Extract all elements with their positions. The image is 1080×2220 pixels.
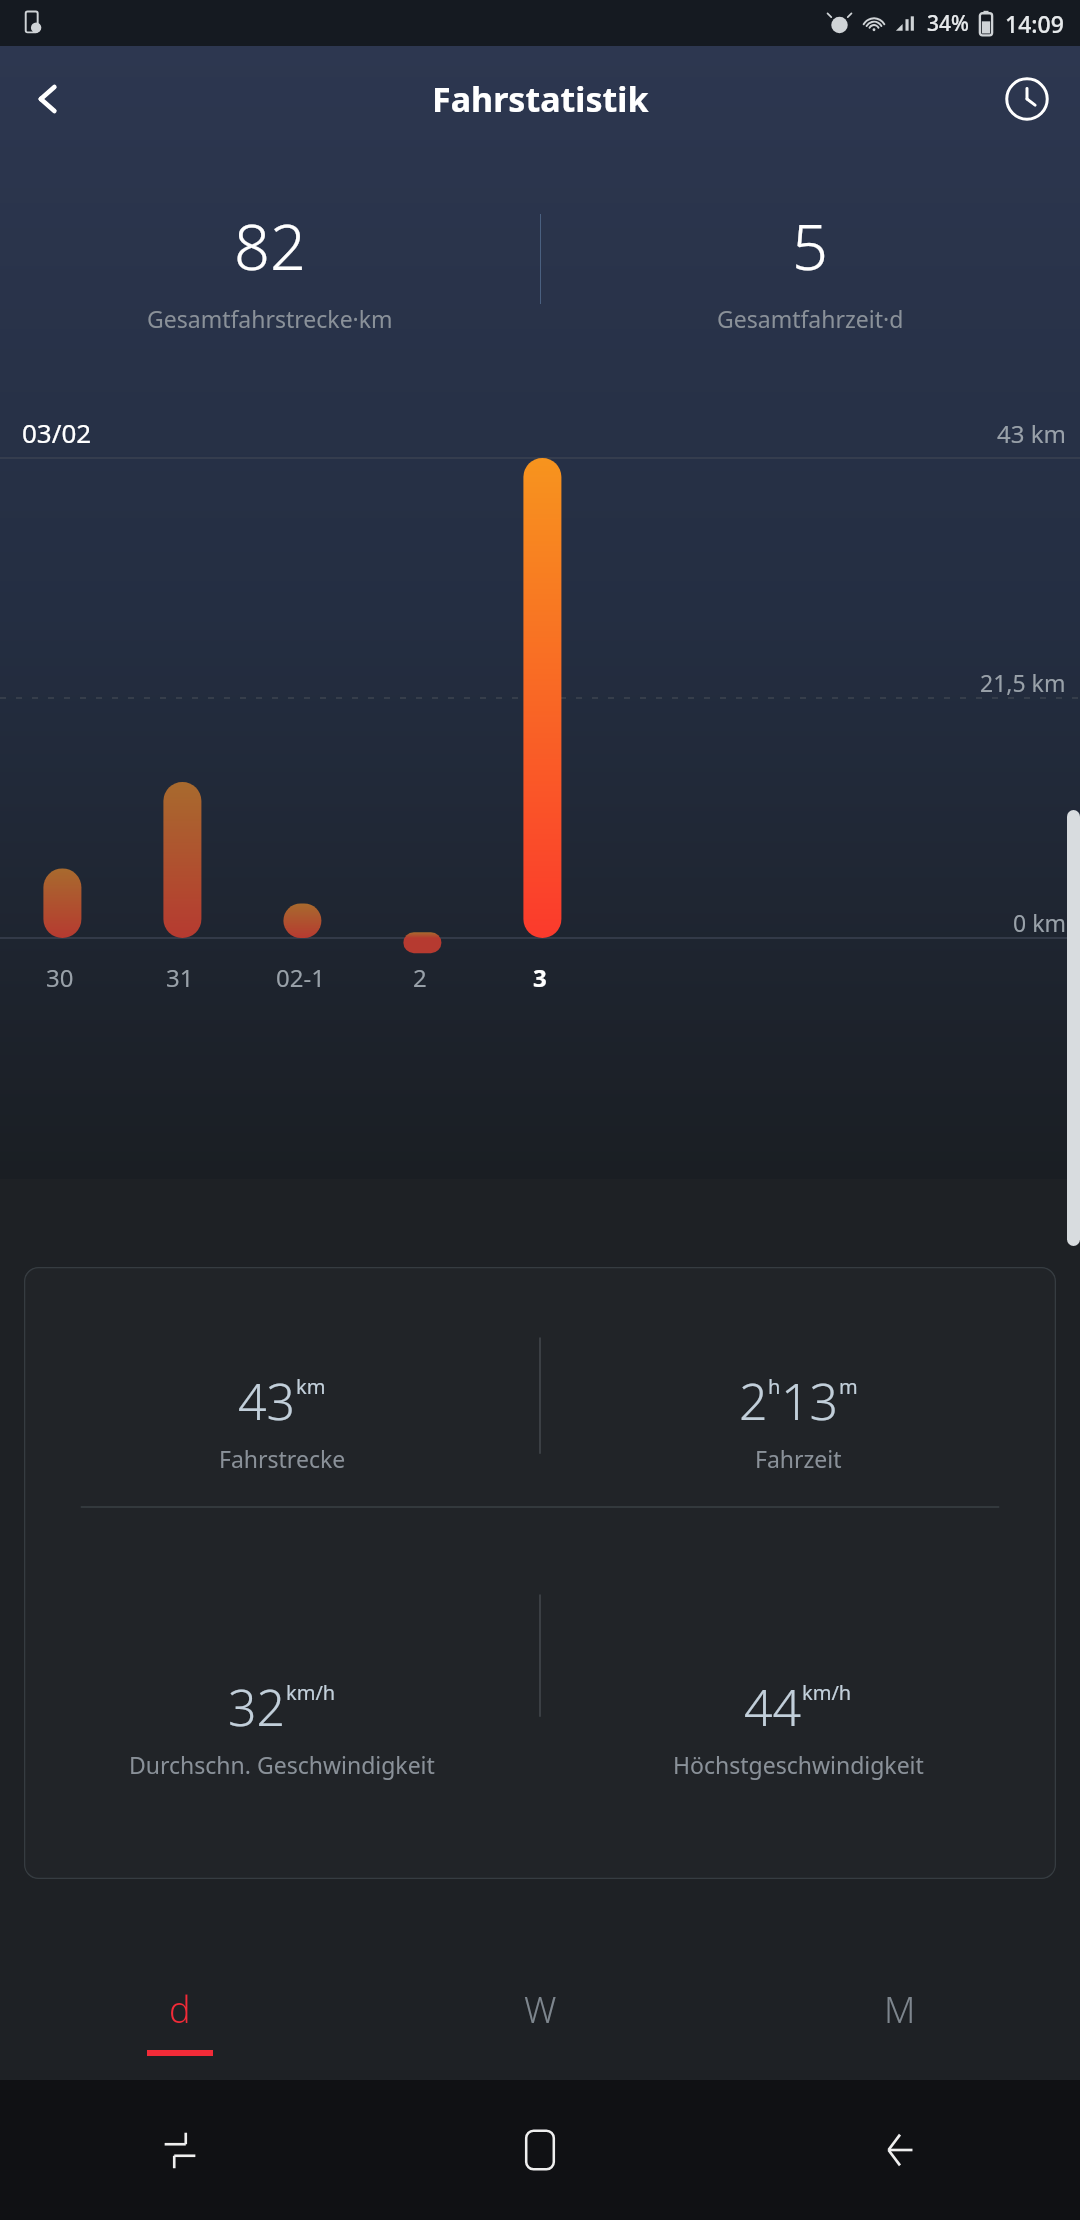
button[interactable]: History (984, 51, 1070, 147)
staticText: d (169, 1985, 191, 2034)
staticText: 34% (927, 9, 969, 38)
staticText: 3 (533, 961, 547, 994)
button[interactable]: Back (0, 51, 96, 147)
staticText: Fahrzeit (755, 1443, 842, 1474)
staticText: 44 (744, 1673, 802, 1741)
staticText: km/h (286, 1679, 336, 1706)
staticText: W (524, 1985, 557, 2034)
staticText: 2 (413, 961, 427, 994)
staticText: h (768, 1373, 781, 1400)
staticText: m (839, 1373, 858, 1400)
staticText: km (296, 1373, 326, 1400)
staticText: 31 (166, 961, 194, 994)
staticText: Höchstgeschwindigkeit (673, 1749, 924, 1780)
staticText: Gesamtfahrstrecke·km (147, 303, 393, 334)
staticText: 21,5 km (980, 667, 1066, 698)
button[interactable]: M (720, 1960, 1080, 2080)
staticText: 82 (234, 203, 306, 289)
staticText: Gesamtfahrzeit·d (717, 303, 904, 334)
button[interactable]: Home (360, 2080, 720, 2220)
staticText: 43 (238, 1367, 296, 1435)
staticText: Durchschn. Geschwindigkeit (129, 1749, 435, 1780)
staticText: 5 (792, 203, 828, 289)
button[interactable]: 43 (24, 1267, 1056, 1879)
staticText: 2 (739, 1367, 768, 1435)
staticText: Fahrstatistik (432, 76, 649, 122)
staticText: 13 (781, 1367, 839, 1435)
staticText: 02-1 (276, 961, 325, 994)
button[interactable]: W (360, 1960, 720, 2080)
staticText: 03/02 (22, 415, 92, 450)
staticText: 30 (46, 961, 74, 994)
staticText: 0 km (1013, 907, 1066, 938)
staticText: km/h (802, 1679, 852, 1706)
staticText: M (884, 1985, 916, 2034)
staticText: 14:09 (1005, 8, 1064, 39)
staticText: 32 (228, 1673, 286, 1741)
staticText: Fahrstrecke (219, 1443, 346, 1474)
button[interactable]: Back (720, 2080, 1080, 2220)
button[interactable]: d (0, 1960, 360, 2080)
button[interactable]: Recents (0, 2080, 360, 2220)
staticText: 43 km (997, 417, 1066, 450)
